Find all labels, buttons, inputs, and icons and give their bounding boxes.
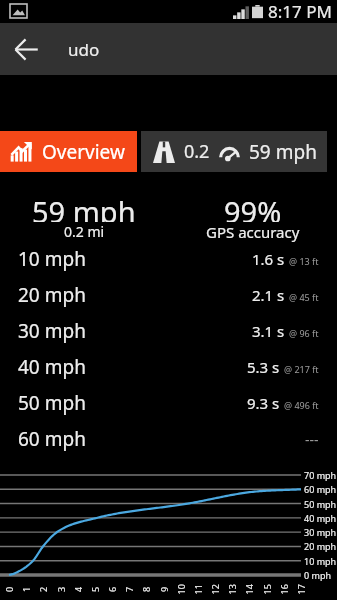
staticText: 30 mph [18,318,86,344]
staticText: 99% [224,192,282,222]
button[interactable]: Back [0,23,52,75]
button[interactable]: 30 mph [0,313,337,349]
staticText: Overview [42,139,125,165]
staticText: 10 mph [18,246,86,272]
staticText: 3.1 s [252,321,285,341]
button[interactable]: Overview [0,131,137,172]
staticText: 0.2 [184,139,210,164]
staticText: 59 mph [249,139,317,165]
staticText: 1.6 s [252,249,285,269]
staticText: @ 45 ft [289,291,319,303]
staticText: @ 496 ft [284,399,319,411]
button[interactable]: 0.2 [141,131,327,172]
staticText: @ 13 ft [289,255,319,267]
staticText: 0.2 mi [64,222,105,241]
staticText: GPS accuracy [206,222,300,242]
staticText: 5.3 s [247,357,280,377]
staticText: --- [305,430,319,449]
staticText: 9.3 s [247,393,280,413]
button[interactable]: 60 mph [0,421,337,457]
staticText: 20 mph [18,282,86,308]
staticText: udo [68,38,100,61]
staticText: @ 217 ft [284,363,319,375]
staticText: @ 96 ft [289,327,319,339]
button[interactable]: 50 mph [0,385,337,421]
staticText: 8:17 PM [268,0,332,23]
button[interactable]: 40 mph [0,349,337,385]
staticText: 59 mph [32,192,136,222]
staticText: 40 mph [18,354,86,380]
staticText: 50 mph [18,390,86,416]
staticText: 60 mph [18,426,86,452]
staticText: 2.1 s [252,285,285,305]
button[interactable]: 10 mph [0,241,337,277]
button[interactable]: 20 mph [0,277,337,313]
